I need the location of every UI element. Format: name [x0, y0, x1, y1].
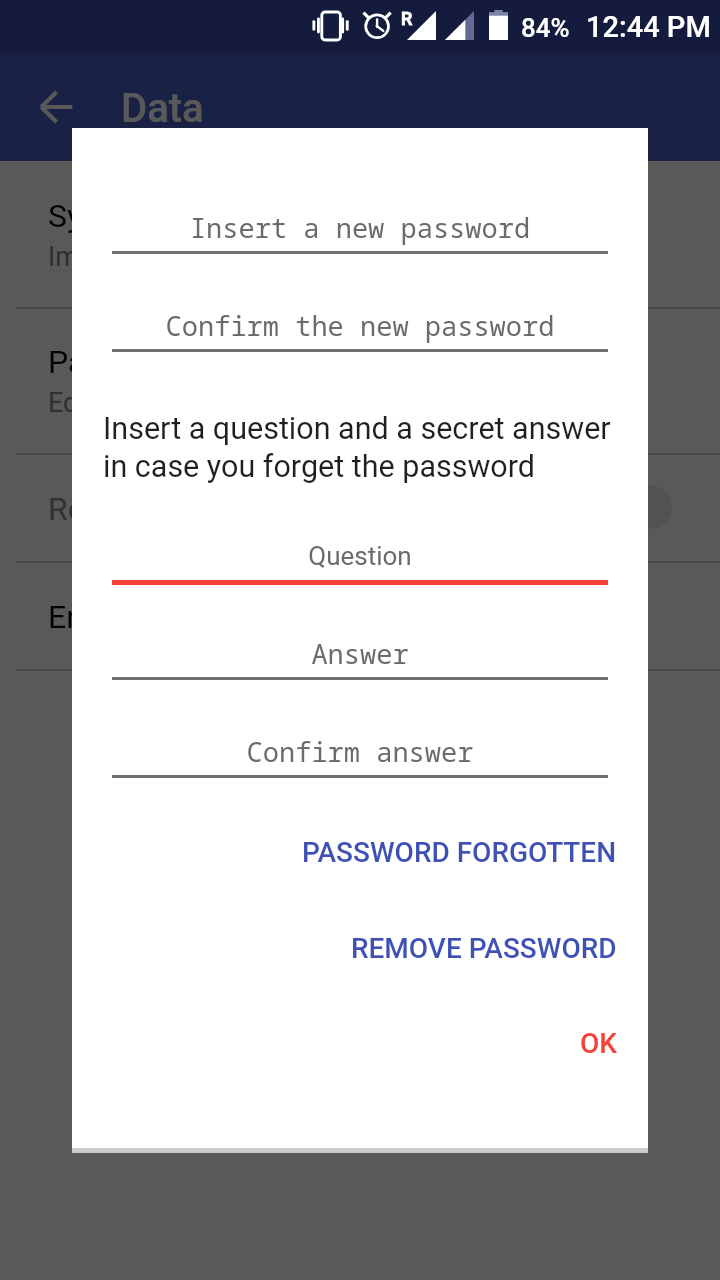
button[interactable]: Question — [112, 518, 608, 585]
button[interactable]: Password — [0, 307, 720, 453]
staticText: REMOVE PASSWORD — [351, 932, 617, 965]
button[interactable]: Answer — [112, 615, 608, 680]
staticText: Confirm the new password — [112, 307, 608, 344]
staticText: 12:44 PM — [586, 10, 711, 44]
staticText: Password — [48, 343, 190, 381]
staticText: OK — [580, 1027, 617, 1060]
staticText: 84% — [521, 13, 570, 43]
button[interactable]: Confirm answer — [112, 713, 608, 778]
staticText: Edit the access password — [48, 387, 355, 419]
button[interactable]: Insert a new password — [112, 189, 608, 254]
button[interactable]: Remove ads — [0, 453, 720, 561]
staticText: Question — [112, 541, 608, 571]
button[interactable]: Back — [12, 69, 100, 145]
staticText: Answer — [112, 635, 608, 672]
staticText: Insert a new password — [112, 209, 608, 246]
staticText: Encryption — [48, 598, 200, 636]
staticText: Remove ads — [48, 490, 223, 528]
staticText: Import and export your data — [48, 241, 383, 273]
button[interactable]: Encryption — [0, 561, 720, 669]
staticText: PASSWORD FORGOTTEN — [302, 836, 617, 869]
button[interactable]: Confirm the new password — [112, 287, 608, 352]
staticText: Insert a question and a secret answer in… — [103, 411, 615, 485]
staticText: R — [401, 8, 413, 29]
button[interactable]: PASSWORD FORGOTTEN — [294, 824, 625, 881]
staticText: Data — [121, 85, 204, 132]
button[interactable]: OK — [572, 1015, 625, 1072]
staticText: Sync — [48, 197, 117, 235]
button[interactable]: REMOVE PASSWORD — [343, 920, 625, 977]
button[interactable]: Sync — [0, 161, 720, 307]
staticText: Confirm answer — [112, 733, 608, 770]
